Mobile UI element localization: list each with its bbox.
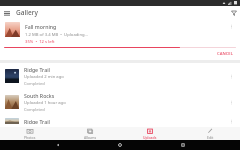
button[interactable]: Ridge Trail (0, 63, 240, 89)
staticText: Edit (207, 135, 214, 140)
button[interactable]: More options (227, 98, 236, 107)
staticText: Completed (24, 81, 45, 86)
button[interactable]: Photos (0, 127, 60, 140)
staticText: Photos (24, 135, 36, 140)
staticText: Albums (84, 135, 97, 140)
button[interactable]: More options (227, 118, 236, 124)
staticText: Completed (24, 107, 45, 112)
button[interactable]: CANCEL (214, 50, 236, 58)
staticText: Ridge Trail (24, 118, 50, 124)
button[interactable]: South Rocks (0, 89, 240, 115)
button[interactable]: Albums (60, 127, 120, 140)
staticText: Ridge Trail (24, 66, 50, 73)
staticText: Gallery (16, 8, 38, 17)
staticText: 1.2 MB of 3.4 MB • Uploading… (25, 32, 88, 38)
button[interactable]: Filter (227, 6, 240, 19)
button[interactable]: Open navigation menu (0, 6, 13, 19)
staticText: Uploaded 1 hour ago (24, 100, 66, 106)
button[interactable]: More options (227, 22, 236, 31)
staticText: 35% • 12 s left (25, 39, 55, 45)
button[interactable]: Home (115, 140, 125, 150)
button[interactable]: Back (53, 140, 63, 150)
staticText: South Rocks (24, 92, 55, 99)
button[interactable]: Recent apps (178, 140, 188, 150)
button[interactable]: More options (227, 72, 236, 81)
staticText: Fall morning (25, 23, 57, 30)
staticText: CANCEL (217, 51, 233, 57)
staticText: Uploads (143, 135, 157, 140)
button[interactable]: Uploads (120, 127, 180, 140)
staticText: Uploaded 2 min ago (24, 74, 64, 80)
button[interactable]: Fall morning (0, 19, 240, 60)
button[interactable]: Edit (180, 127, 240, 140)
button[interactable]: Ridge Trail (0, 115, 240, 127)
